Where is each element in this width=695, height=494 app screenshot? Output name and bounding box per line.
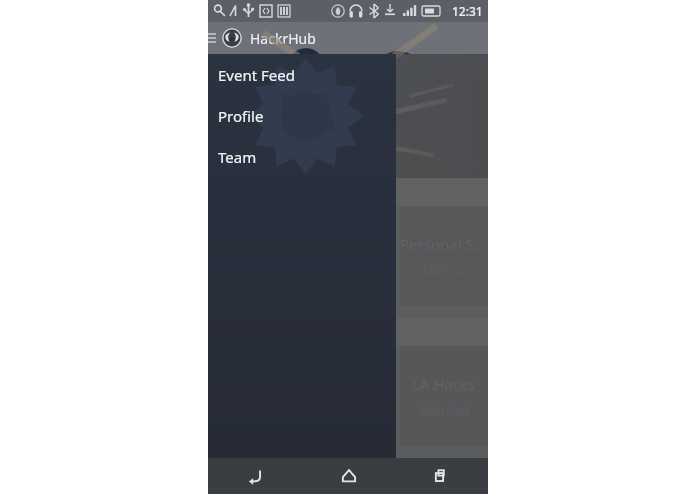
button[interactable]: Back — [208, 458, 302, 494]
button[interactable]: Home — [302, 458, 395, 494]
staticText: 12:31 — [452, 3, 483, 19]
button[interactable]: Recent apps — [395, 458, 488, 494]
staticText: Profile — [218, 106, 264, 126]
button[interactable]: Team — [208, 136, 396, 177]
button[interactable]: Profile — [208, 95, 396, 136]
button[interactable]: Open navigation drawer — [208, 22, 216, 54]
staticText: Event Feed — [218, 65, 295, 85]
staticText: HackrHub — [250, 29, 316, 48]
staticText: Team — [218, 147, 257, 167]
staticText: LA Hacks — [412, 374, 476, 394]
button[interactable]: Event Feed — [208, 54, 396, 95]
